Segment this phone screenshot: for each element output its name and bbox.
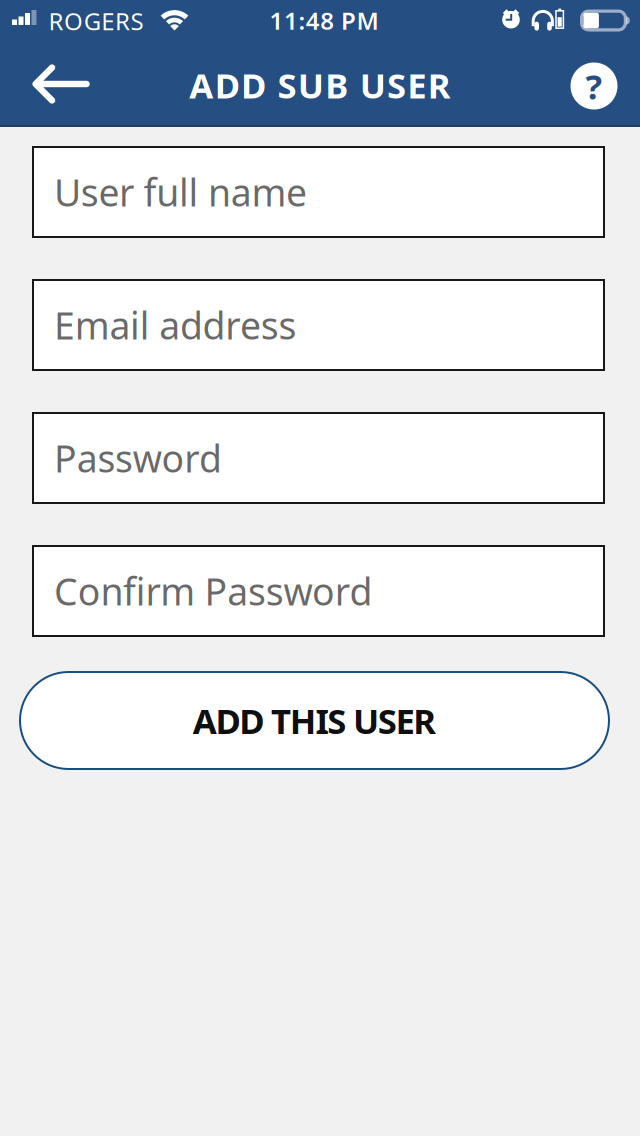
staticText: Confirm Password bbox=[54, 566, 372, 616]
staticText: Password bbox=[54, 433, 222, 483]
staticText: ADD SUB USER bbox=[189, 62, 451, 108]
staticText: ? bbox=[585, 63, 602, 109]
staticText: User full name bbox=[54, 167, 307, 217]
button[interactable]: Email address bbox=[32, 279, 605, 371]
staticText: Email address bbox=[54, 300, 296, 350]
button[interactable]: ? bbox=[570, 62, 617, 109]
staticText: ADD THIS USER bbox=[193, 697, 436, 743]
button[interactable]: Password bbox=[32, 412, 605, 504]
button[interactable]: Confirm Password bbox=[32, 545, 605, 637]
staticText: 11:48 PM bbox=[270, 5, 378, 36]
button[interactable]: User full name bbox=[32, 146, 605, 238]
button[interactable] bbox=[22, 52, 98, 116]
staticText: ROGERS bbox=[48, 5, 143, 37]
button[interactable]: ADD THIS USER bbox=[19, 671, 610, 770]
